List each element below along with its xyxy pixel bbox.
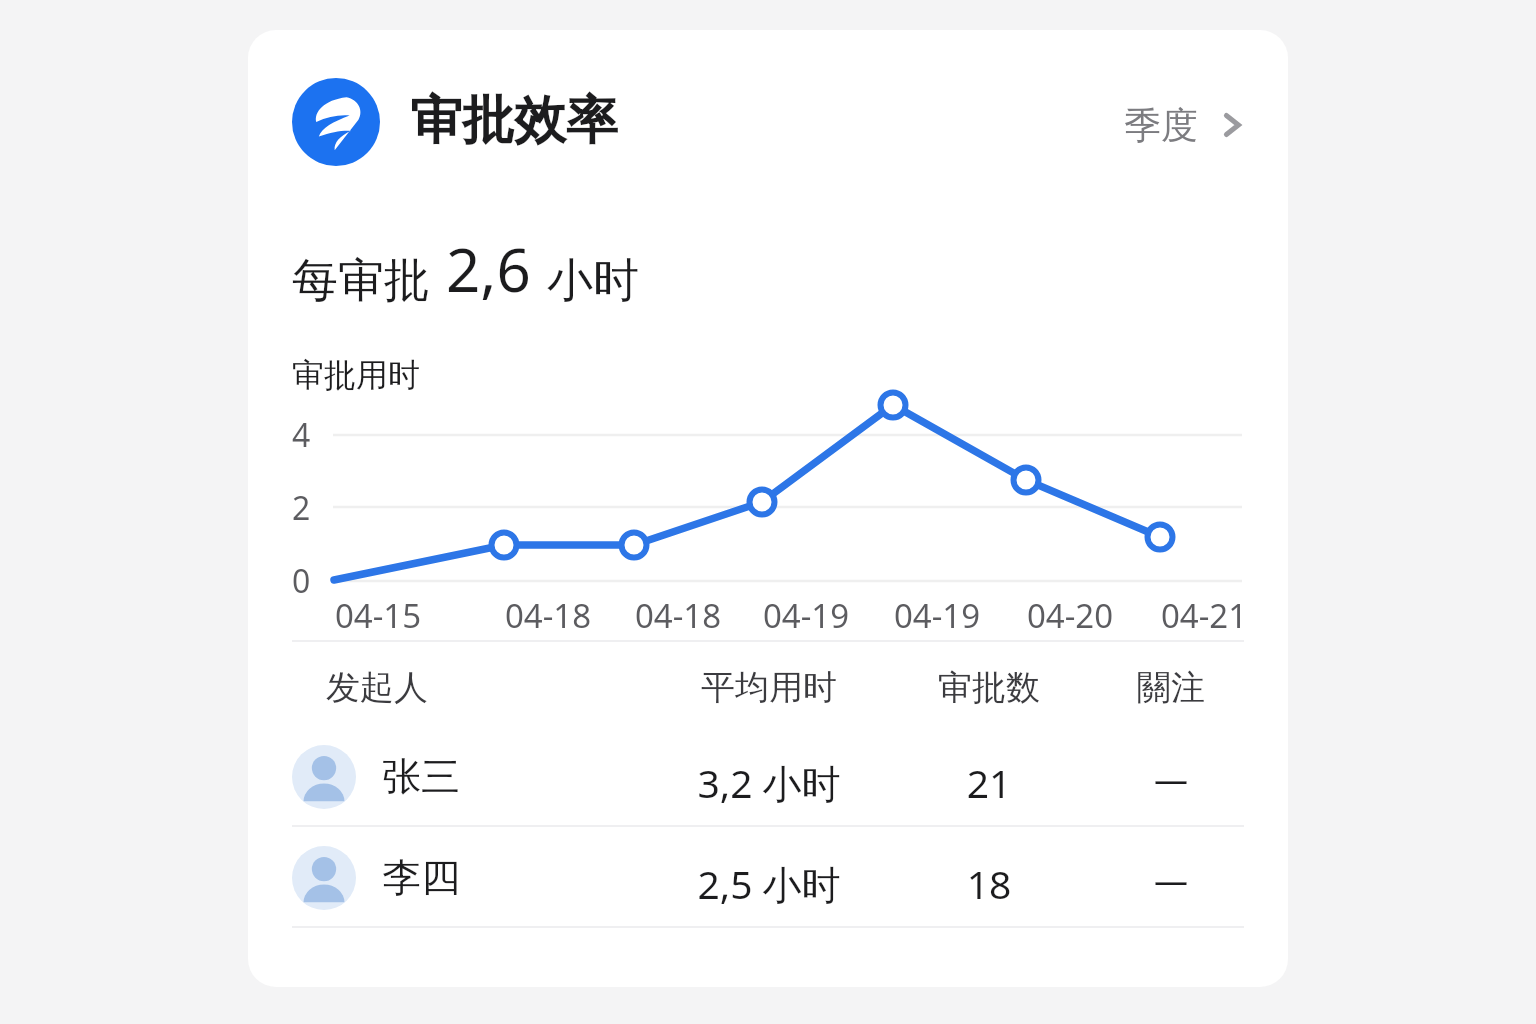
staticText: 21 <box>898 756 1080 809</box>
staticText: 季度 <box>1124 102 1198 149</box>
staticText: 李四 <box>382 853 460 902</box>
staticText: 2,6 <box>446 228 531 310</box>
staticText: 關注 <box>1098 666 1244 709</box>
staticText: 2 <box>292 486 311 530</box>
other: More <box>1218 111 1246 139</box>
staticText: 4 <box>292 413 311 457</box>
staticText: 张三 <box>382 752 460 801</box>
staticText: 2,5 小时 <box>662 857 876 910</box>
staticText: 04-15 <box>308 593 448 638</box>
staticText: 审批用时 <box>292 355 420 395</box>
staticText: 平均用时 <box>662 666 876 709</box>
staticText: 04-19 <box>867 593 1007 638</box>
staticText: 3,2 小时 <box>662 756 876 809</box>
staticText: 04-19 <box>736 593 876 638</box>
staticText: 每审批 <box>292 252 430 310</box>
button[interactable]: 张三 <box>292 728 1244 825</box>
staticText: 04-18 <box>478 593 618 638</box>
staticText: 18 <box>898 857 1080 910</box>
staticText: 04-20 <box>1000 593 1140 638</box>
staticText: 发起人 <box>292 666 462 709</box>
staticText: 0 <box>292 559 311 603</box>
staticText: — <box>1098 857 1244 903</box>
staticText: 04-21 <box>1134 593 1274 638</box>
staticText: 小时 <box>547 252 639 310</box>
staticText: — <box>1098 756 1244 802</box>
staticText: 04-18 <box>608 593 748 638</box>
staticText: 审批数 <box>898 666 1080 709</box>
staticText: 审批效率 <box>410 88 618 154</box>
button[interactable]: 李四 <box>292 829 1244 926</box>
button[interactable]: 季度 <box>1084 94 1246 156</box>
